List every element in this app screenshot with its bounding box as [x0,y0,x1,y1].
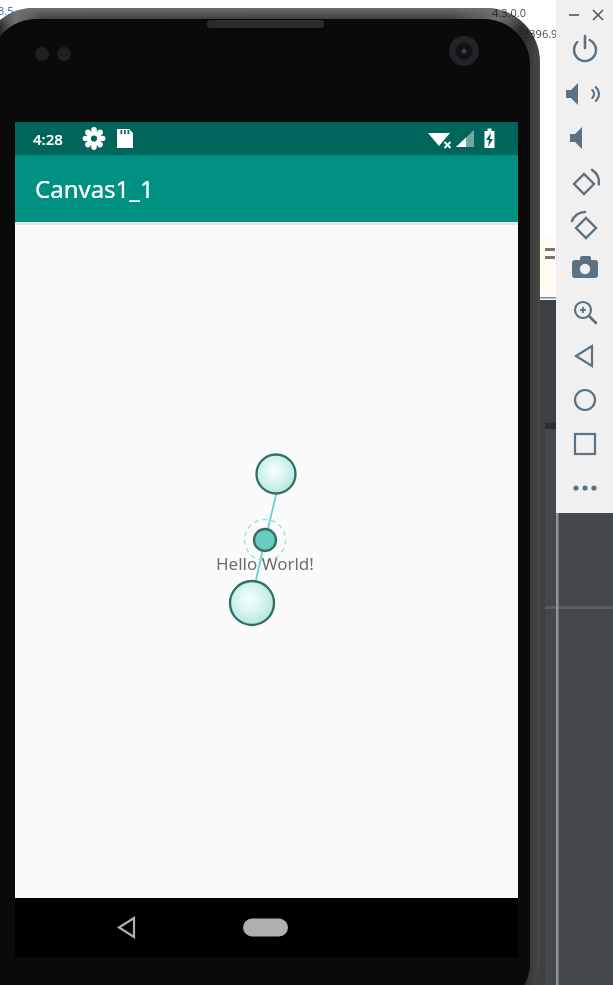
button[interactable]: Rotate right [558,204,611,248]
button[interactable]: Back [90,898,162,957]
staticText: 4:28 [33,129,63,149]
staticText: 3.5 [0,3,14,18]
button[interactable]: Rotate left [558,160,611,204]
button[interactable]: Screenshot [558,248,611,292]
button[interactable]: Close [588,2,613,24]
button[interactable]: Home [229,898,301,957]
button[interactable]: Zoom [558,292,611,336]
staticText: Canvas1_1 [35,172,154,205]
button[interactable]: Volume down [558,116,611,160]
button[interactable]: Canvas1_1 [15,155,518,222]
button[interactable]: Home [558,380,611,424]
button[interactable]: Minimize [560,2,585,24]
staticText: 4.3.0.0 [492,5,527,20]
staticText: 3396.9 [523,26,558,41]
button[interactable]: Overview [558,424,611,468]
button[interactable]: Back [558,336,611,380]
button[interactable]: More [558,468,611,512]
button[interactable]: Power [558,28,611,72]
staticText: Hello World! [216,552,314,575]
button[interactable]: Volume up [558,72,611,116]
